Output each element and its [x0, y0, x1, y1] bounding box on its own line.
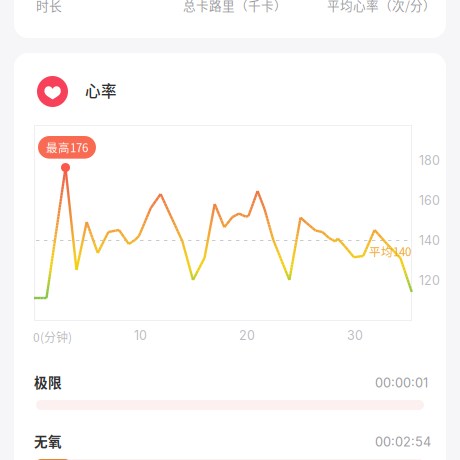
staticText: 140 [419, 233, 440, 248]
staticText: 时长 [36, 0, 62, 14]
staticText: 平均140 [369, 243, 411, 260]
button[interactable]: 心率 [14, 53, 446, 460]
staticText: 无氧 [34, 431, 62, 451]
staticText: 总卡路里（千卡） [183, 0, 287, 14]
staticText: 心率 [85, 79, 117, 101]
staticText: 30 [347, 328, 363, 343]
staticText: 00:00:01 [375, 375, 428, 390]
staticText: 平均心率（次/分） [327, 0, 436, 14]
staticText: 180 [419, 153, 440, 168]
staticText: 极限 [34, 372, 62, 392]
button[interactable]: 时长 [14, 0, 446, 38]
staticText: 0(分钟) [33, 328, 72, 345]
staticText: 00:02:54 [375, 434, 431, 449]
button[interactable]: 极限 [34, 369, 426, 417]
staticText: 20 [239, 328, 255, 343]
staticText: 最高176 [46, 139, 88, 156]
staticText: 160 [419, 193, 440, 208]
staticText: 10 [134, 328, 147, 343]
button[interactable]: 无氧 [34, 428, 426, 460]
staticText: 120 [419, 273, 440, 288]
